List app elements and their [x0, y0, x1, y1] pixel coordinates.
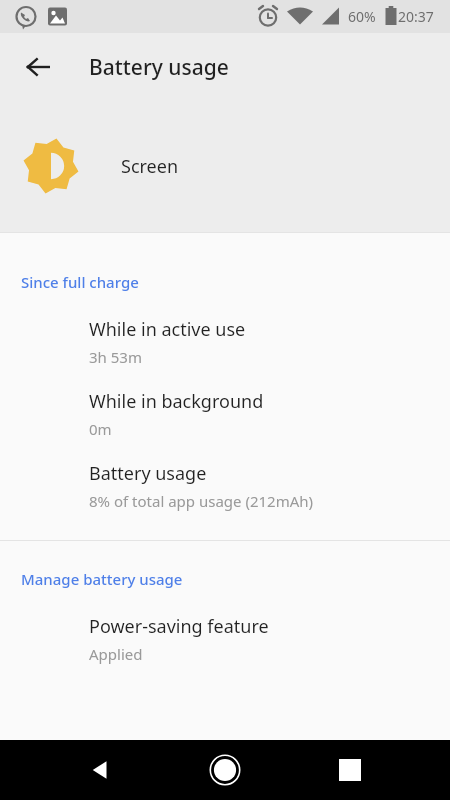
button[interactable]: Power-saving feature [0, 603, 450, 675]
button[interactable]: Home [197, 742, 253, 798]
staticText: Since full charge [21, 272, 139, 292]
button[interactable]: Back [14, 43, 62, 91]
button[interactable]: While in background [0, 378, 450, 450]
staticText: 0m [89, 419, 112, 439]
staticText: Power-saving feature [89, 614, 269, 639]
button[interactable]: Battery usage [0, 450, 450, 522]
staticText: 8% of total app usage (212mAh) [89, 491, 314, 511]
button[interactable]: Recent apps [322, 742, 378, 798]
staticText: Battery usage [89, 461, 207, 486]
staticText: 20:37 [398, 7, 434, 26]
button[interactable]: Back [72, 742, 128, 798]
staticText: Battery usage [89, 53, 229, 82]
staticText: Applied [89, 644, 143, 664]
button[interactable]: While in active use [0, 306, 450, 378]
staticText: Screen [121, 154, 179, 179]
staticText: While in background [89, 389, 264, 414]
staticText: 60% [348, 7, 376, 26]
staticText: Manage battery usage [21, 569, 183, 589]
staticText: While in active use [89, 317, 246, 342]
staticText: 3h 53m [89, 347, 142, 367]
